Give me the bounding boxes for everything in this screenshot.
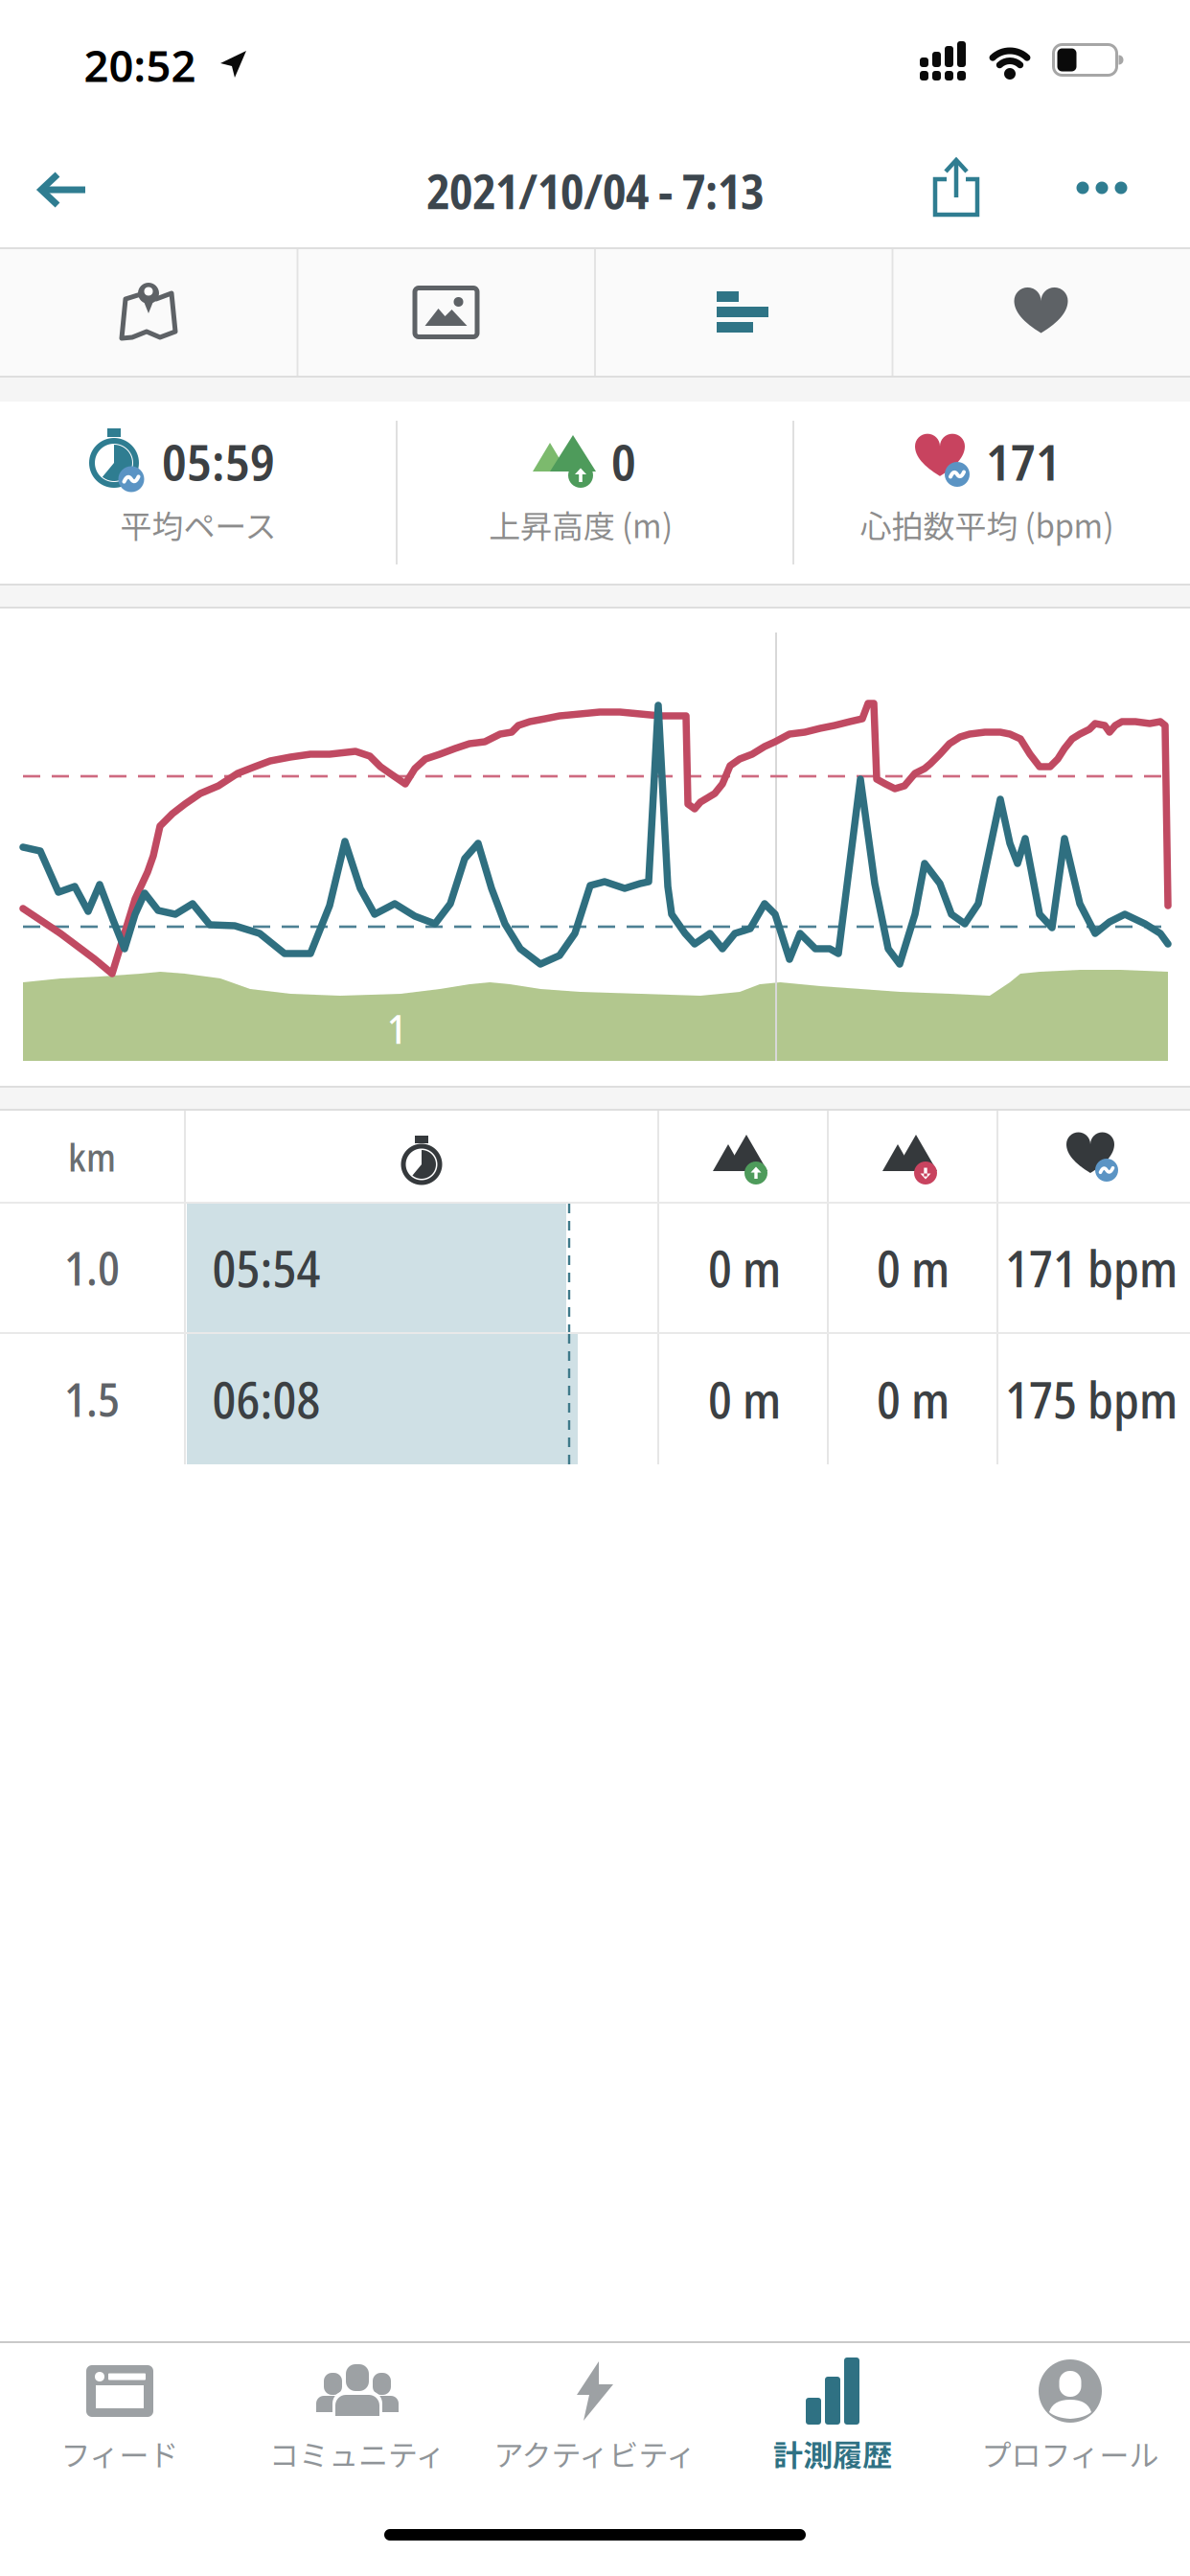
button[interactable]: 計測履歴 <box>714 2343 951 2496</box>
staticText: 平均ペース <box>120 501 276 547</box>
button[interactable]: フィード <box>1 2343 239 2496</box>
staticText: 1.0 <box>64 1237 120 1299</box>
staticText: アクティビティ <box>494 2432 696 2475</box>
staticText: コミュニティ <box>269 2432 446 2475</box>
staticText: 心拍数平均 (bpm) <box>860 501 1114 547</box>
staticText: 1.5 <box>64 1368 120 1431</box>
staticText: km <box>68 1131 116 1183</box>
staticText: フィード <box>61 2432 179 2475</box>
staticText: 2021/10/04 - 7:13 <box>426 158 764 223</box>
button[interactable]: Heart rate <box>893 249 1189 376</box>
button[interactable]: アクティビティ <box>476 2343 714 2496</box>
staticText: 06:08 <box>212 1365 320 1433</box>
staticText: 1 <box>387 1001 406 1056</box>
staticText: 05:54 <box>212 1234 320 1302</box>
staticText: プロフィール <box>982 2432 1159 2475</box>
staticText: 20:52 <box>84 36 196 94</box>
button[interactable]: Stats <box>595 249 892 376</box>
staticText: 0 m <box>708 1234 781 1302</box>
button[interactable]: More <box>1064 159 1140 217</box>
button[interactable]: プロフィール <box>951 2343 1189 2496</box>
button[interactable]: Back <box>20 151 106 228</box>
staticText: 0 m <box>708 1365 781 1433</box>
staticText: 171 bpm <box>1005 1234 1178 1302</box>
button[interactable]: コミュニティ <box>239 2343 476 2496</box>
button[interactable]: Photos <box>298 249 594 376</box>
staticText: 175 bpm <box>1005 1365 1178 1433</box>
button[interactable]: Share <box>923 149 990 225</box>
staticText: 上昇高度 (m) <box>489 501 673 547</box>
button[interactable]: Map <box>0 249 297 376</box>
staticText: 05:59 <box>162 426 275 496</box>
staticText: 0 <box>611 426 636 496</box>
staticText: 計測履歴 <box>773 2432 892 2475</box>
staticText: 171 <box>986 426 1061 496</box>
staticText: 0 m <box>877 1234 950 1302</box>
staticText: 0 m <box>877 1365 950 1433</box>
